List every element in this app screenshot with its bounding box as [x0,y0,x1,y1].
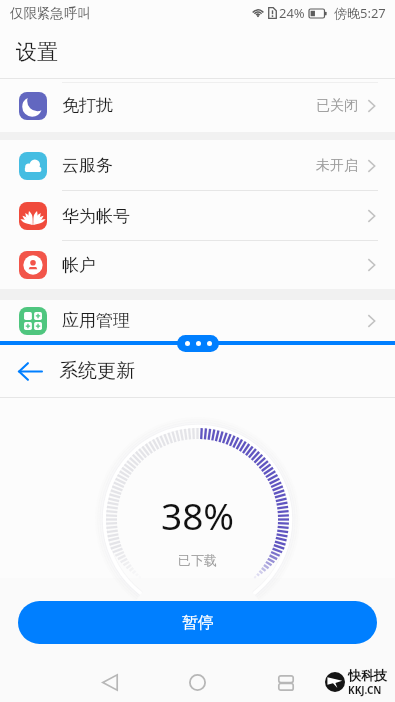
staticText: 暂停 [182,613,214,633]
button[interactable]: 云服务 [0,140,395,191]
staticText: 快科技 [348,667,387,683]
button[interactable]: More [177,335,219,352]
button[interactable]: 暂停 [18,601,377,644]
staticText: 已关闭 [316,97,358,115]
staticText: 云服务 [62,155,113,176]
button[interactable]: Back [87,660,132,702]
button[interactable]: 免打扰 [0,79,395,132]
button[interactable]: Home [175,660,220,702]
button[interactable]: 华为帐号 [0,191,395,241]
staticText: 仅限紧急呼叫 [10,5,91,22]
button[interactable]: Recents [263,660,308,702]
staticText: 已下载 [178,552,217,568]
button[interactable]: 帐户 [0,241,395,289]
staticText: 傍晚5:27 [334,4,386,22]
staticText: 24% [279,4,305,22]
staticText: KKJ.CN [348,683,382,697]
button[interactable]: 应用管理 [0,300,395,341]
staticText: 设置 [16,39,58,65]
staticText: 应用管理 [62,310,130,331]
staticText: 华为帐号 [62,206,130,227]
staticText: 38% [161,490,235,540]
staticText: 未开启 [316,157,358,175]
staticText: 帐户 [62,255,96,276]
button[interactable]: Back [14,355,46,387]
staticText: 系统更新 [59,359,135,383]
staticText: 免打扰 [62,95,113,116]
